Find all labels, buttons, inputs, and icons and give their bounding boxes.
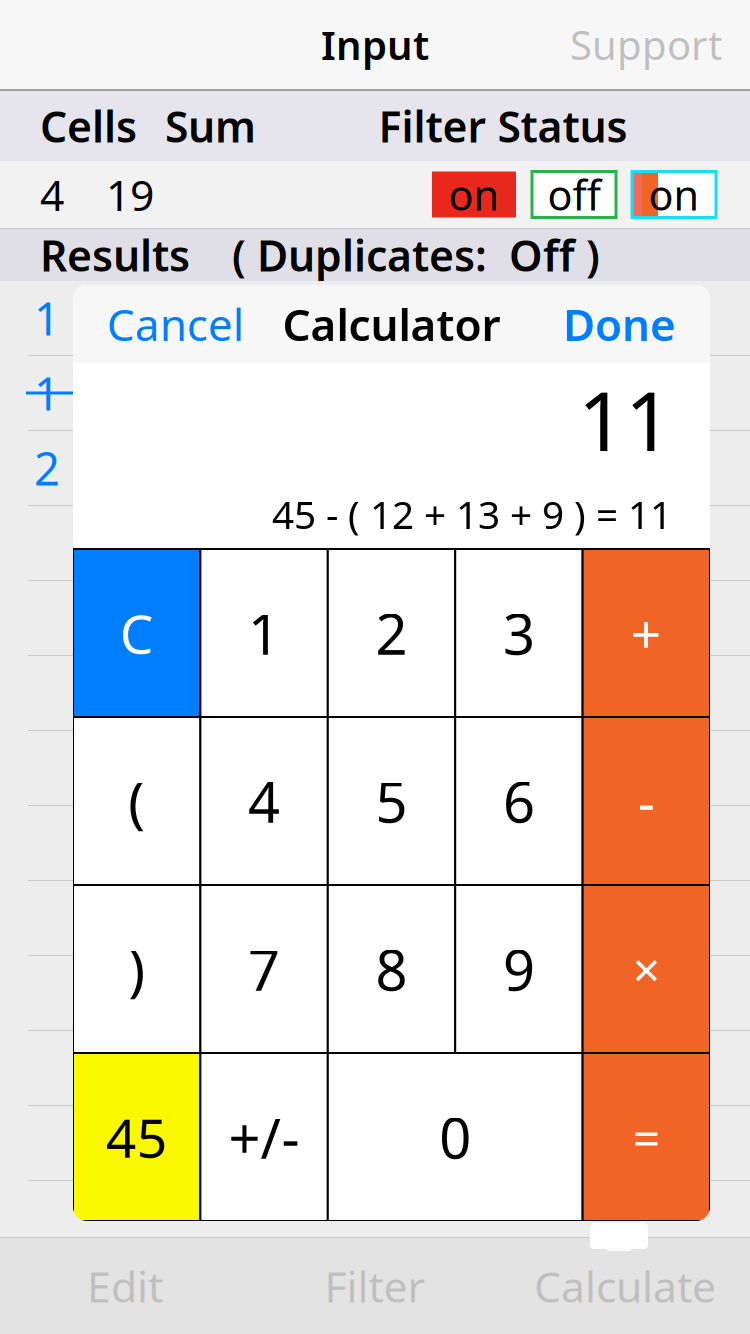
button[interactable]: 6 <box>455 717 583 885</box>
button[interactable]: Support <box>556 10 736 79</box>
button[interactable]: + <box>583 549 710 717</box>
button[interactable]: Calculate <box>500 1238 750 1334</box>
button[interactable]: 0 <box>328 1053 583 1221</box>
staticText: 2 <box>375 596 407 670</box>
staticText: Results <box>40 227 190 283</box>
button[interactable]: ( <box>73 717 200 885</box>
staticText <box>62 513 74 573</box>
staticText: Done <box>563 295 676 353</box>
button[interactable]: 5 <box>328 717 455 885</box>
staticText: - <box>638 766 655 836</box>
button[interactable]: Done <box>545 285 694 363</box>
button[interactable]: 2 <box>328 549 455 717</box>
staticText: +/- <box>229 1100 300 1174</box>
staticText: Input <box>321 18 429 71</box>
staticText: 45 <box>106 1102 168 1172</box>
staticText: on <box>448 167 499 222</box>
staticText: Filter Status <box>378 98 627 154</box>
staticText: Edit <box>87 1258 163 1314</box>
staticText: 19 <box>106 166 154 223</box>
staticText: 11 <box>578 364 672 474</box>
staticText: 6 <box>503 764 535 838</box>
staticText: C <box>120 598 154 668</box>
staticText: 3 <box>503 596 535 670</box>
button[interactable]: × <box>583 885 710 1053</box>
staticText: 4 <box>248 764 280 838</box>
staticText: 1 <box>248 596 280 670</box>
staticText: 1 <box>34 288 60 348</box>
staticText <box>62 738 74 798</box>
staticText: 7 <box>248 932 280 1006</box>
staticText: 2 <box>34 438 60 498</box>
staticText: × <box>633 937 660 1001</box>
button[interactable]: C <box>73 549 200 717</box>
staticText: Calculator <box>282 295 500 353</box>
staticText: = <box>633 1105 660 1169</box>
button[interactable]: 7 <box>200 885 328 1053</box>
button[interactable]: 3 <box>455 549 583 717</box>
button[interactable]: Edit <box>0 1238 250 1334</box>
staticText <box>62 813 74 873</box>
staticText: 45 - ( 12 + 13 + 9 ) = 11 <box>272 488 672 539</box>
button[interactable]: 45 <box>73 1053 200 1221</box>
button[interactable]: - <box>583 717 710 885</box>
staticText: 1 <box>34 363 60 423</box>
staticText: off <box>547 167 600 222</box>
button[interactable]: 1 <box>200 549 328 717</box>
staticText: Calculate <box>534 1258 716 1314</box>
staticText <box>62 1038 74 1098</box>
button[interactable]: = <box>583 1053 710 1221</box>
staticText: Cancel <box>107 295 244 353</box>
staticText: 0 <box>439 1100 471 1174</box>
staticText <box>62 888 74 948</box>
staticText: ( <box>128 764 145 838</box>
staticText <box>62 663 74 723</box>
staticText: on <box>648 167 699 222</box>
button[interactable]: Cancel <box>89 285 262 363</box>
staticText: Sum <box>165 98 256 154</box>
staticText <box>62 588 74 648</box>
staticText: ( Duplicates: Off ) <box>232 227 600 283</box>
staticText: ) <box>128 932 145 1006</box>
staticText <box>62 963 74 1023</box>
staticText: Cells <box>40 98 137 154</box>
button[interactable]: 4 <box>200 717 328 885</box>
staticText: 9 <box>503 932 535 1006</box>
button[interactable]: +/- <box>200 1053 328 1221</box>
button[interactable]: ) <box>73 885 200 1053</box>
staticText: 4 <box>40 166 64 223</box>
staticText: Filter <box>324 1258 425 1314</box>
button[interactable]: 9 <box>455 885 583 1053</box>
button[interactable]: Filter <box>250 1238 500 1334</box>
staticText <box>62 1113 74 1173</box>
staticText: 8 <box>375 932 407 1006</box>
button[interactable]: 8 <box>328 885 455 1053</box>
staticText: 5 <box>375 764 407 838</box>
staticText: + <box>631 598 662 668</box>
staticText: Support <box>570 18 722 71</box>
